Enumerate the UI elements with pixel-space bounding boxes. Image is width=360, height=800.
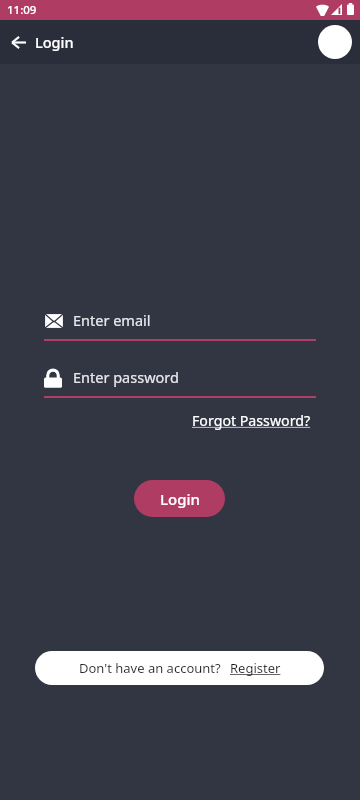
staticText: Register [230, 659, 281, 677]
staticText: Forgot Password? [192, 411, 311, 430]
other: Wi-Fi [316, 4, 329, 16]
staticText: Enter email [73, 310, 151, 330]
staticText: Don't have an account? [79, 659, 221, 677]
button[interactable]: Don't have an account? [35, 651, 324, 685]
button[interactable]: Back [11, 36, 26, 49]
staticText: Login [35, 32, 74, 52]
staticText: Enter password [73, 367, 179, 387]
staticText: Login [160, 489, 200, 509]
other: Password [44, 368, 62, 389]
button[interactable]: Forgot Password? [192, 411, 311, 430]
button[interactable]: Profile [318, 25, 352, 59]
button[interactable]: Password [0, 365, 360, 398]
button[interactable]: Login [134, 480, 225, 517]
staticText: 11:09 [7, 2, 37, 18]
other: Mobile signal [331, 4, 342, 15]
button[interactable]: Email [0, 308, 360, 341]
other: Email [44, 313, 64, 329]
other: Battery [347, 3, 354, 15]
